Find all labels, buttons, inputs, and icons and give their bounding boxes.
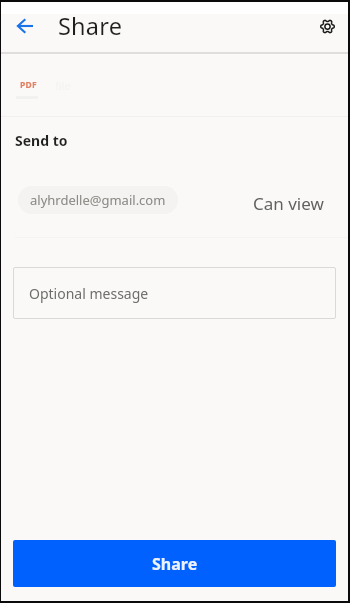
staticText: Share — [58, 10, 123, 42]
button[interactable]: Back — [6, 7, 44, 45]
button[interactable]: Share — [13, 540, 336, 587]
button[interactable]: Can view — [253, 192, 324, 215]
staticText: Share — [152, 553, 198, 575]
button[interactable]: Settings — [308, 7, 346, 45]
staticText: Can view — [253, 192, 324, 215]
staticText: Send to — [15, 131, 68, 150]
button[interactable]: Optional message — [13, 267, 336, 319]
staticText: Optional message — [29, 284, 149, 303]
staticText: PDF — [20, 79, 38, 91]
staticText: alyhrdelle@gmail.com — [30, 191, 166, 209]
